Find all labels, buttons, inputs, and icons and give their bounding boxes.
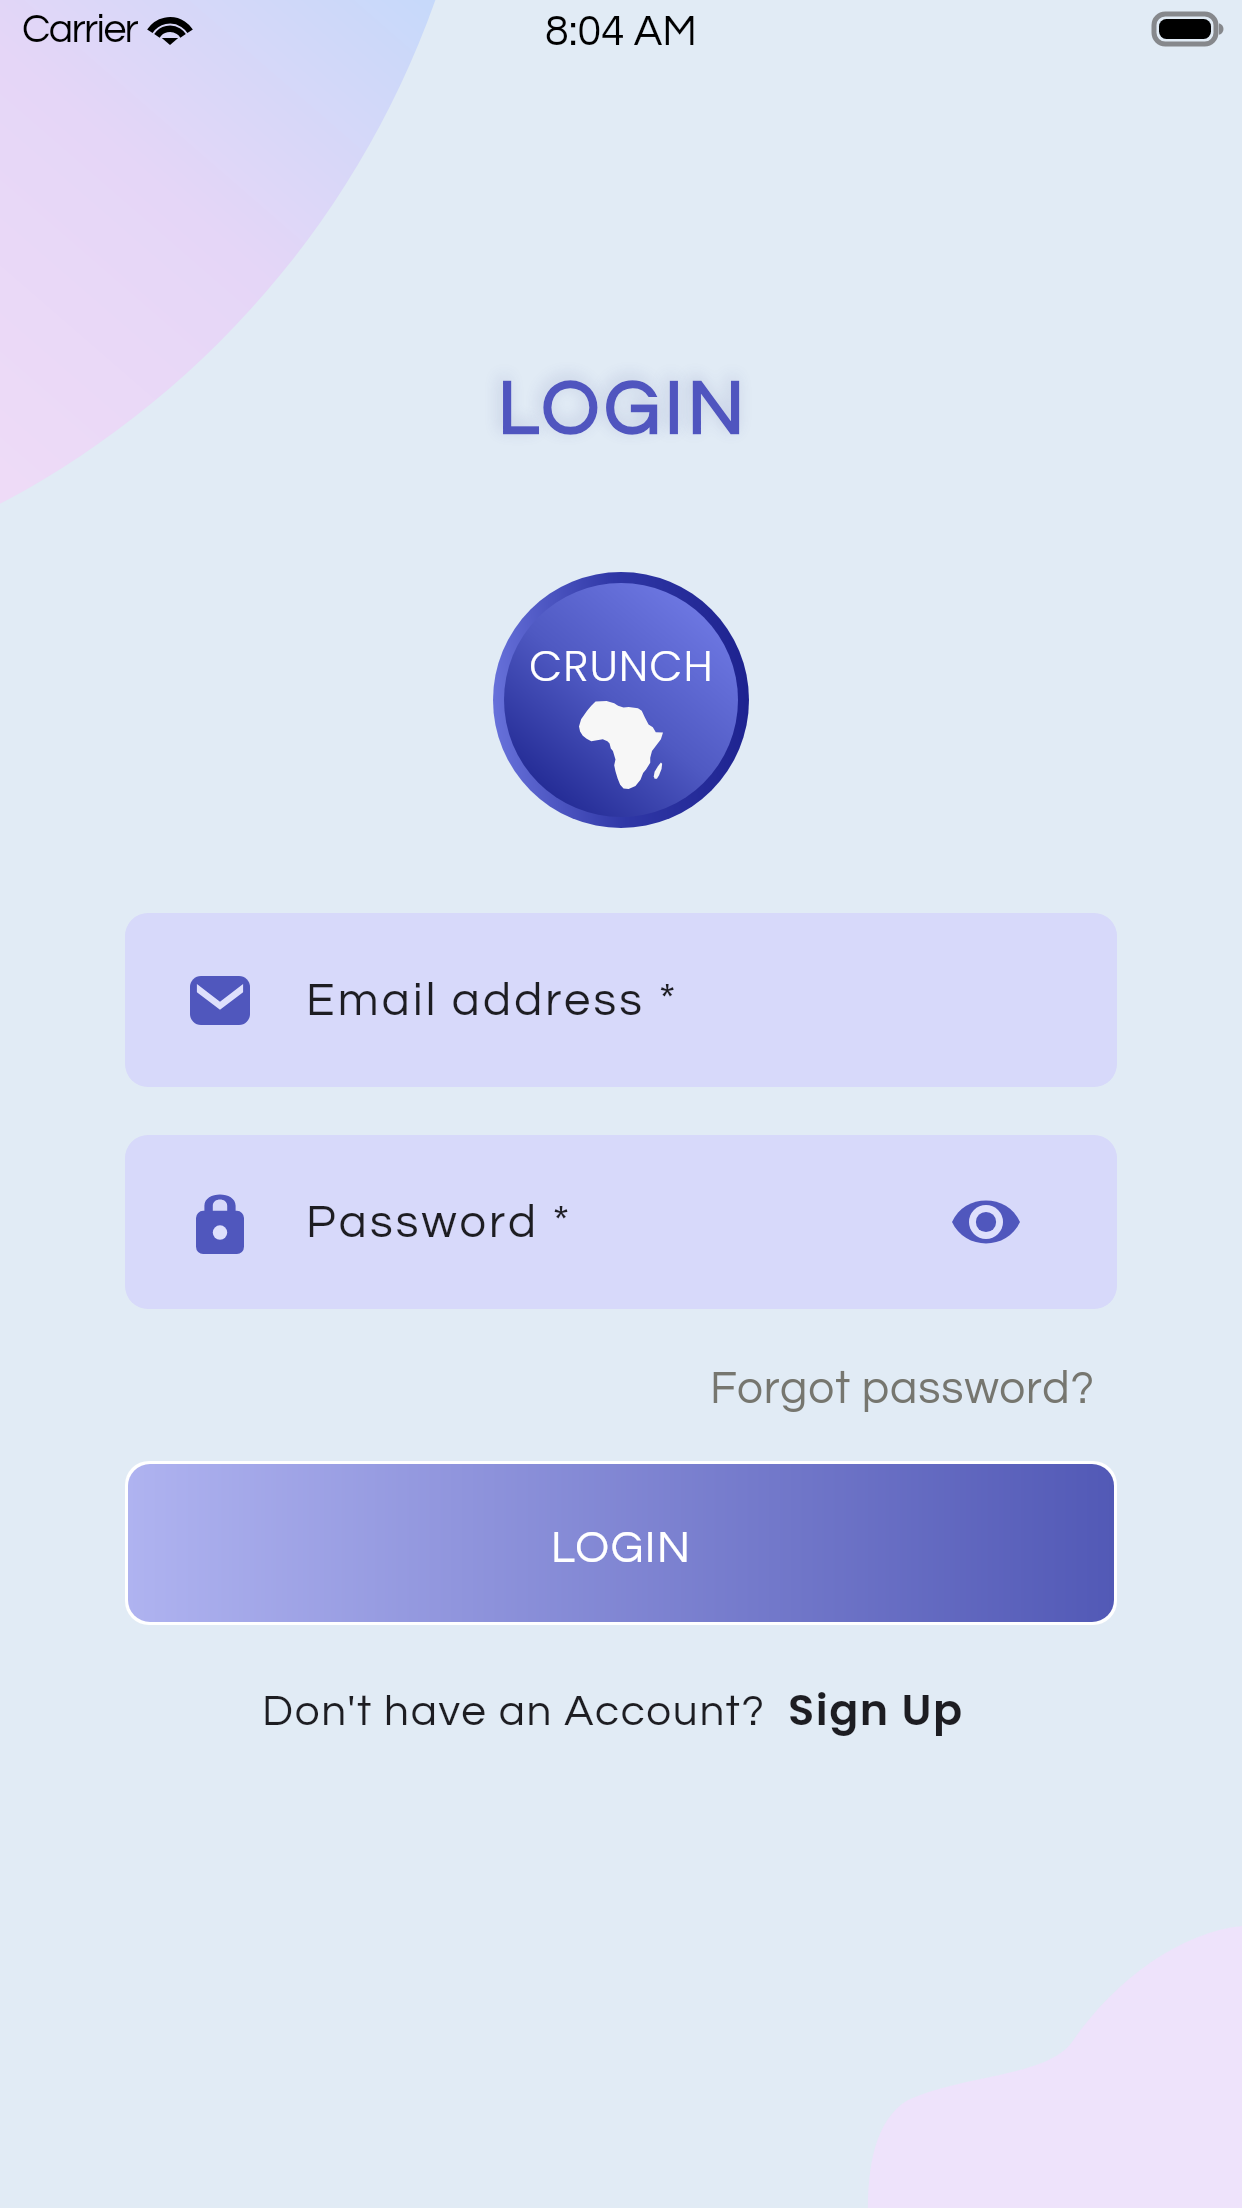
- staticText: Email address *: [306, 976, 680, 1024]
- button[interactable]: Email address *: [125, 913, 1117, 1087]
- staticText: Password *: [306, 1198, 573, 1246]
- button[interactable]: Sign Up: [788, 1680, 964, 1740]
- button[interactable]: LOGIN: [128, 1464, 1114, 1622]
- button[interactable]: Show password: [936, 1172, 1036, 1272]
- staticText: Carrier: [22, 8, 138, 50]
- button[interactable]: Password *: [125, 1135, 1117, 1309]
- staticText: LOGIN: [551, 1525, 692, 1571]
- staticText: 8:04 AM: [545, 10, 697, 54]
- staticText: LOGIN: [498, 370, 749, 449]
- button[interactable]: Forgot password?: [710, 1365, 1095, 1412]
- staticText: Don't have an Account?: [262, 1689, 766, 1734]
- staticText: CRUNCH: [529, 636, 714, 696]
